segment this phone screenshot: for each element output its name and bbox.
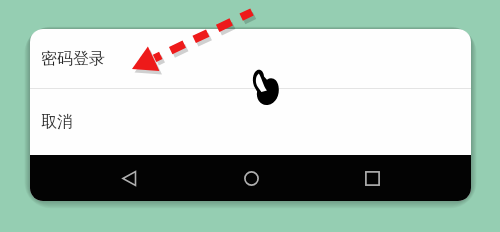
button[interactable]: Home xyxy=(229,156,273,200)
button[interactable]: Back xyxy=(107,156,151,200)
staticText: 密码登录 xyxy=(41,49,105,69)
staticText: 取消 xyxy=(41,112,73,132)
button[interactable]: 取消 xyxy=(30,89,471,155)
button[interactable]: 密码登录 xyxy=(30,29,471,88)
button[interactable]: Recent apps xyxy=(350,156,394,200)
